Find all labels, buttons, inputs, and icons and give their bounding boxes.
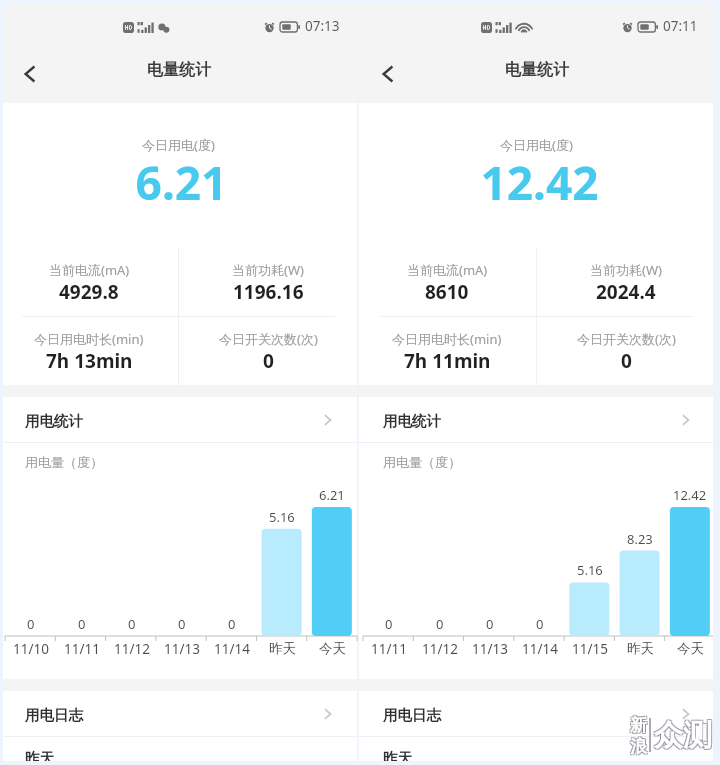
staticText: 今天 — [677, 640, 704, 657]
staticText: 0 — [178, 615, 186, 633]
staticText: 0 — [536, 615, 544, 633]
button[interactable]: Back — [14, 58, 46, 90]
staticText: 5.16 — [269, 508, 295, 526]
staticText: 8.23 — [627, 530, 653, 548]
staticText: 用电日志 — [25, 706, 83, 724]
staticText: 0 — [486, 615, 494, 633]
staticText: 0 — [128, 615, 136, 633]
staticText: 11/14 — [522, 640, 558, 658]
staticText: 众测 — [655, 718, 713, 755]
staticText: 众测 — [655, 716, 713, 753]
staticText: 当前电流(mA) — [49, 261, 130, 279]
staticText: 新 — [629, 716, 646, 737]
staticText: 0 — [27, 615, 35, 633]
staticText: 6.21 — [319, 486, 345, 504]
staticText: 新 — [631, 716, 648, 737]
staticText: 用电统计 — [383, 412, 441, 430]
staticText: 今日用电(度) — [0, 136, 357, 154]
staticText: 0 — [228, 615, 236, 633]
staticText: 众测 — [653, 718, 711, 755]
staticText: 11/11 — [64, 640, 100, 658]
staticText: 昨天 — [627, 640, 654, 657]
staticText: 11/14 — [214, 640, 250, 658]
staticText: 电量统计 — [147, 60, 211, 80]
staticText: 浪 — [631, 735, 648, 756]
staticText: 浪 — [629, 735, 646, 756]
staticText: 今日开关次数(次) — [219, 330, 318, 348]
button[interactable]: Back — [372, 58, 404, 90]
staticText: 昨天 — [383, 749, 412, 765]
staticText: 浪 — [630, 736, 647, 757]
staticText: 用电统计 — [25, 412, 83, 430]
staticText: 用电日志 — [383, 706, 441, 724]
staticText: 用电量（度） — [383, 454, 461, 470]
staticText: 0 — [78, 615, 86, 633]
staticText: 浪 — [631, 737, 648, 758]
staticText: 0 — [263, 348, 274, 374]
staticText: 6.21 — [3, 151, 360, 214]
staticText: 11/12 — [422, 640, 458, 658]
staticText: 11/13 — [472, 640, 508, 658]
staticText: 今日用电(度) — [359, 136, 713, 154]
staticText: 当前功耗(W) — [590, 261, 662, 279]
button[interactable]: 用电日志 — [359, 691, 713, 736]
staticText: 0 — [621, 348, 632, 374]
button[interactable]: 用电统计 — [0, 397, 357, 442]
staticText: 11/11 — [371, 640, 407, 658]
staticText: 当前电流(mA) — [407, 261, 488, 279]
staticText: 8610 — [425, 279, 469, 305]
staticText: 电量统计 — [505, 60, 569, 80]
staticText: 11/13 — [164, 640, 200, 658]
staticText: 11/15 — [572, 640, 608, 658]
staticText: 07:11 — [663, 17, 698, 35]
staticText: 当前功耗(W) — [232, 261, 304, 279]
staticText: 07:13 — [305, 17, 340, 35]
staticText: 今日开关次数(次) — [577, 330, 676, 348]
staticText: 0 — [436, 615, 444, 633]
staticText: 5.16 — [577, 561, 603, 579]
staticText: 新 — [630, 715, 647, 736]
staticText: 今日用电时长(min) — [392, 330, 502, 348]
staticText: 12.42 — [361, 151, 713, 214]
button[interactable]: 用电统计 — [359, 397, 713, 442]
staticText: 用电量（度） — [25, 454, 103, 470]
button[interactable]: 用电日志 — [0, 691, 357, 736]
staticText: 1196.16 — [233, 279, 304, 305]
staticText: 今天 — [319, 640, 346, 657]
staticText: 0 — [385, 615, 393, 633]
staticText: 11/10 — [13, 640, 49, 658]
staticText: 众测 — [653, 716, 711, 753]
staticText: 4929.8 — [59, 279, 119, 305]
staticText: 昨天 — [25, 749, 54, 765]
staticText: 众测 — [654, 717, 712, 754]
staticText: 新 — [631, 714, 648, 735]
staticText: 11/12 — [114, 640, 150, 658]
staticText: 7h 13min — [46, 348, 133, 374]
staticText: 新 — [629, 714, 646, 735]
staticText: 浪 — [629, 737, 646, 758]
staticText: 12.42 — [673, 486, 707, 504]
staticText: 7h 11min — [404, 348, 491, 374]
staticText: 今日用电时长(min) — [34, 330, 144, 348]
staticText: 昨天 — [269, 640, 296, 657]
staticText: 2024.4 — [596, 279, 656, 305]
